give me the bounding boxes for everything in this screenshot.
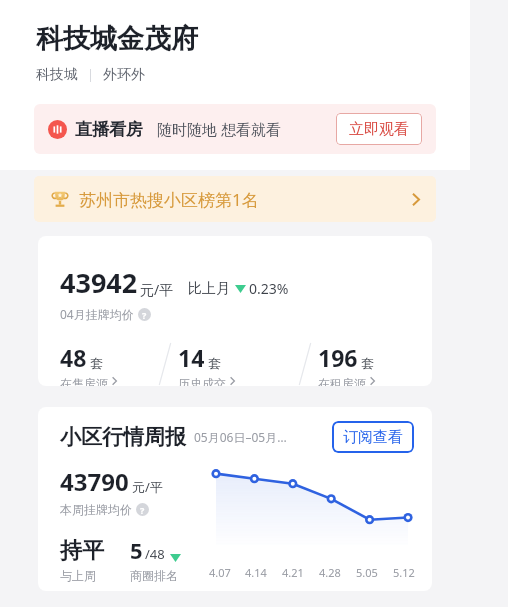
- staticText: 套: [361, 355, 374, 371]
- staticText: 43942: [60, 264, 138, 301]
- staticText: 4.21: [282, 565, 304, 580]
- staticText: 比上月: [188, 280, 230, 298]
- button[interactable]: 14: [178, 342, 292, 386]
- staticText: 在售房源: [60, 376, 108, 386]
- staticText: 持平: [60, 537, 104, 565]
- staticText: 外环外: [103, 66, 145, 84]
- staticText: 元/平: [132, 478, 163, 496]
- staticText: 小区行情周报: [60, 424, 186, 450]
- staticText: 本周挂牌均价: [60, 502, 132, 517]
- button[interactable]: 立即观看: [336, 113, 422, 145]
- staticText: 4.28: [319, 565, 341, 580]
- staticText: 元/平: [140, 280, 174, 299]
- staticText: 5.12: [393, 565, 415, 580]
- staticText: 5: [130, 535, 143, 565]
- staticText: /48: [145, 545, 165, 563]
- staticText: 直播看房: [75, 119, 143, 140]
- staticText: 科技城: [36, 66, 78, 84]
- staticText: 0.23%: [249, 279, 289, 298]
- staticText: 与上周: [60, 568, 96, 583]
- staticText: 随时随地 想看就看: [157, 119, 281, 139]
- staticText: 立即观看: [349, 120, 409, 139]
- button[interactable]: 196: [318, 342, 432, 386]
- staticText: 14: [178, 342, 205, 373]
- staticText: ?: [140, 504, 145, 516]
- button[interactable]: 直播看房: [34, 104, 436, 154]
- button[interactable]: 订阅查看: [332, 421, 414, 453]
- staticText: 苏州市热搜小区榜第1名: [79, 188, 259, 211]
- staticText: 5.05: [356, 565, 378, 580]
- staticText: 在租房源: [318, 376, 366, 386]
- staticText: 4.14: [245, 565, 267, 580]
- staticText: 04月挂牌均价: [60, 306, 134, 322]
- button[interactable]: 苏州市热搜小区榜第1名: [34, 176, 436, 222]
- staticText: 套: [208, 355, 221, 371]
- staticText: 196: [318, 342, 358, 373]
- staticText: 订阅查看: [343, 428, 403, 447]
- staticText: 套: [90, 355, 103, 371]
- staticText: 48: [60, 342, 87, 373]
- staticText: 43790: [60, 465, 129, 498]
- staticText: 历史成交: [178, 376, 226, 386]
- staticText: ?: [142, 309, 147, 321]
- staticText: 商圈排名: [130, 568, 178, 583]
- staticText: 05月06日–05月…: [194, 429, 287, 445]
- button[interactable]: 48: [38, 342, 152, 386]
- staticText: 4.07: [209, 565, 231, 580]
- staticText: 科技城金茂府: [36, 22, 198, 56]
